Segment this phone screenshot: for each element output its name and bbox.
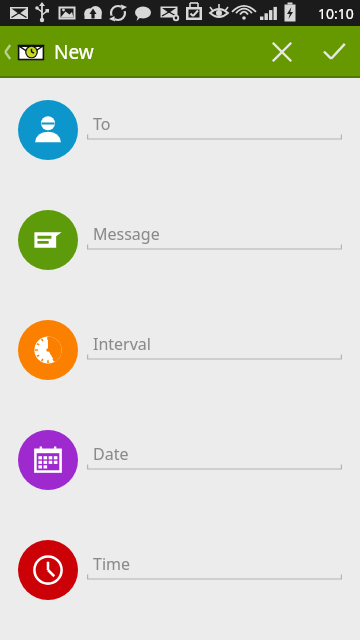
- staticText: 10:10: [318, 4, 354, 23]
- button[interactable]: Interval: [0, 320, 360, 380]
- staticText: Message: [93, 223, 160, 245]
- staticText: New: [54, 39, 94, 65]
- staticText: Interval: [93, 333, 151, 355]
- staticText: Date: [93, 443, 129, 465]
- button[interactable]: Message: [0, 210, 360, 270]
- button[interactable]: Up, New: [0, 39, 106, 65]
- button[interactable]: Time: [0, 540, 360, 600]
- staticText: Time: [93, 553, 131, 575]
- button[interactable]: Date: [0, 430, 360, 490]
- button[interactable]: To: [0, 100, 360, 160]
- button[interactable]: Save: [308, 26, 360, 78]
- staticText: To: [93, 113, 111, 135]
- button[interactable]: Discard: [256, 26, 308, 78]
